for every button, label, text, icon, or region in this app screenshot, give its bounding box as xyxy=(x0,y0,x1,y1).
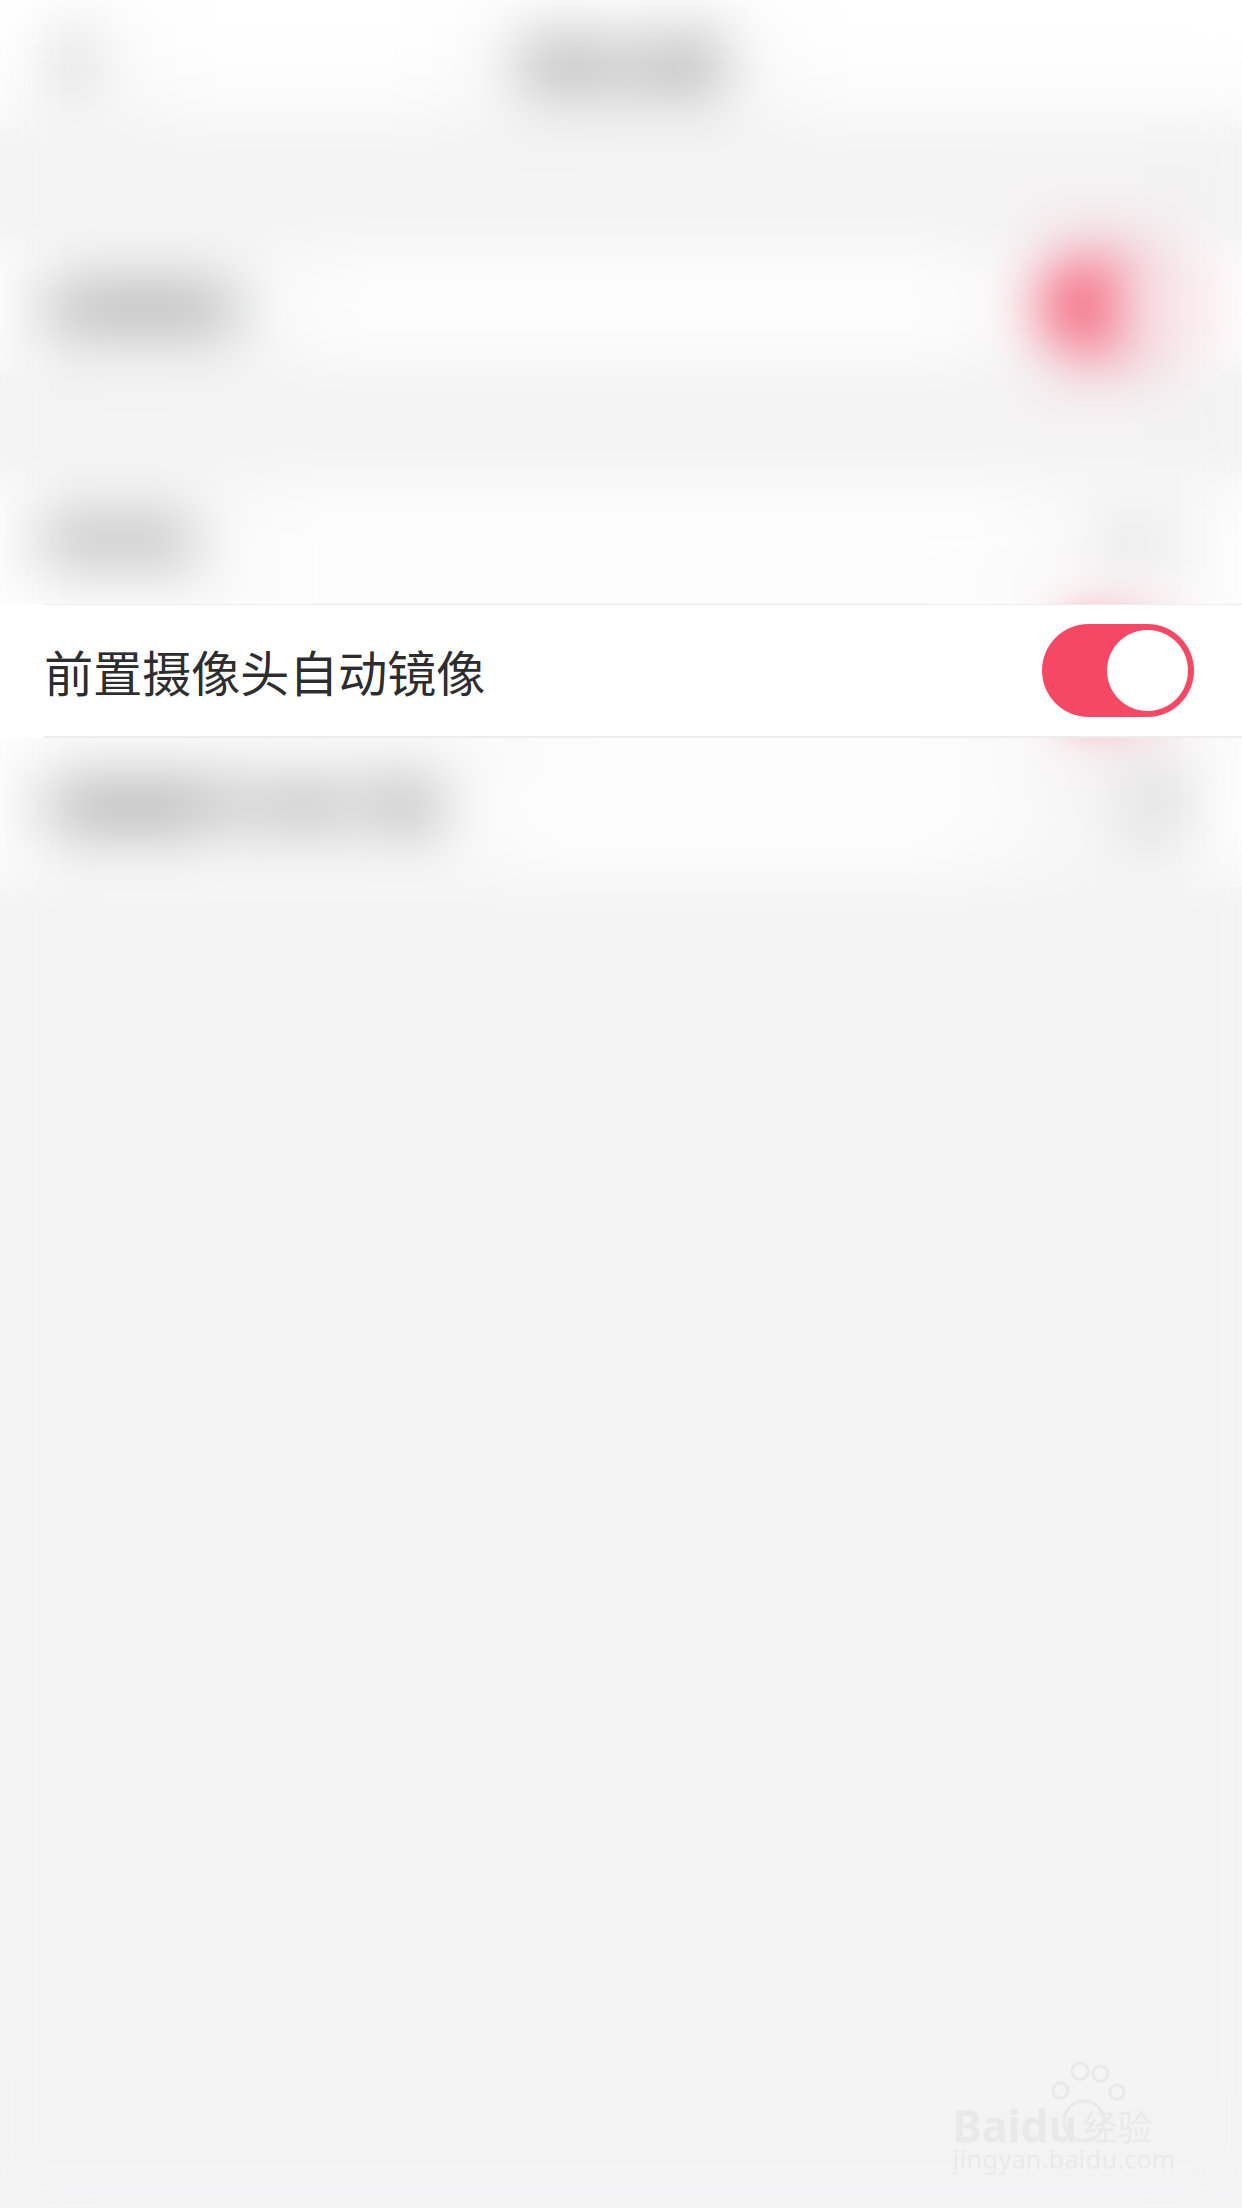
button[interactable]: 前置摄像头自动镜像 xyxy=(0,605,1242,736)
staticText: 相机设置 xyxy=(519,27,723,101)
button[interactable]: 参考线 xyxy=(0,472,1242,603)
staticText: 参考线 xyxy=(44,502,191,573)
button[interactable]: 音量键作为快门键 xyxy=(0,738,1242,869)
staticText: 前置摄像头自动镜像 xyxy=(44,635,485,706)
staticText: 音量键作为快门键 xyxy=(44,768,436,839)
staticText: Baidu xyxy=(952,2096,1077,2155)
staticText: 拍照静音 xyxy=(44,270,240,342)
staticText: jingyan.baidu.com xyxy=(952,2142,1175,2176)
staticText: 经验 xyxy=(1082,2100,1152,2150)
button[interactable]: 拍照静音 xyxy=(0,240,1242,372)
button[interactable]: Back xyxy=(0,2,146,126)
